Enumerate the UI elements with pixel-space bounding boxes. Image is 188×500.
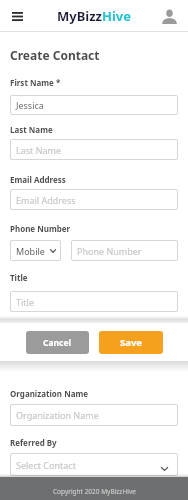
button[interactable] [161,8,177,24]
staticText: Referred By [10,437,57,448]
button[interactable]: Last Name [10,139,178,160]
staticText: Last Name [16,144,62,156]
staticText: Email Address [10,174,66,185]
button[interactable]: Title [10,291,178,312]
staticText: Cancel [43,337,72,349]
staticText: Create Contact [10,47,100,61]
button[interactable]: Organization Name [10,404,178,426]
staticText: Last Name [10,124,53,135]
staticText: Copyright 2020 MyBizzHive [53,487,136,496]
button[interactable]: Phone Number [71,240,178,261]
staticText: Title [16,296,34,308]
button[interactable]: Email Address [10,189,178,210]
staticText: Jessica [16,99,44,111]
button[interactable]: Mobile [10,240,61,261]
staticText: Phone Number [77,245,142,257]
staticText: Title [10,272,28,283]
staticText: Organization Name [16,409,99,421]
staticText: Mobile [16,245,45,257]
staticText: First Name * [10,77,61,88]
button[interactable] [8,7,26,25]
staticText: Phone Number [10,223,71,234]
staticText: Select Contact [16,459,76,471]
button[interactable]: Jessica [10,95,178,115]
button[interactable]: Cancel [26,331,89,354]
button[interactable]: Select Contact [10,453,178,476]
staticText: Save [120,336,143,349]
staticText: Organization Name [10,388,89,399]
button[interactable]: Save [99,331,163,354]
staticText: MyBizzHive [57,7,132,25]
staticText: Email Address [16,194,76,206]
